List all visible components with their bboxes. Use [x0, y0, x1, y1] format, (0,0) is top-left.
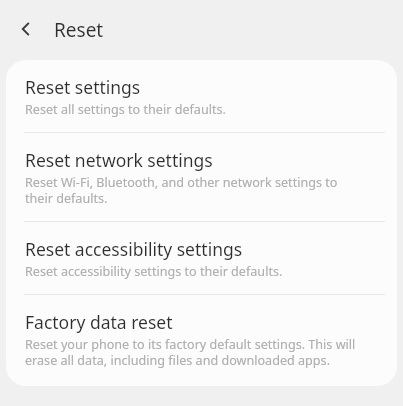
staticText: Reset your phone to its factory default … — [25, 336, 356, 368]
button[interactable]: Reset settings — [6, 60, 397, 133]
button[interactable]: Reset network settings — [6, 133, 397, 222]
staticText: Reset — [54, 17, 104, 43]
staticText: Reset network settings — [25, 150, 213, 172]
button[interactable]: Reset accessibility settings — [6, 222, 397, 295]
button[interactable]: Back — [10, 14, 42, 46]
staticText: Reset accessibility settings to their de… — [25, 263, 283, 279]
staticText: Factory data reset — [25, 312, 173, 334]
staticText: Reset settings — [25, 77, 141, 99]
staticText: Reset Wi-Fi, Bluetooth, and other networ… — [25, 174, 338, 206]
button[interactable]: Factory data reset — [6, 295, 397, 386]
staticText: Reset accessibility settings — [25, 239, 243, 261]
staticText: Reset all settings to their defaults. — [25, 101, 226, 117]
